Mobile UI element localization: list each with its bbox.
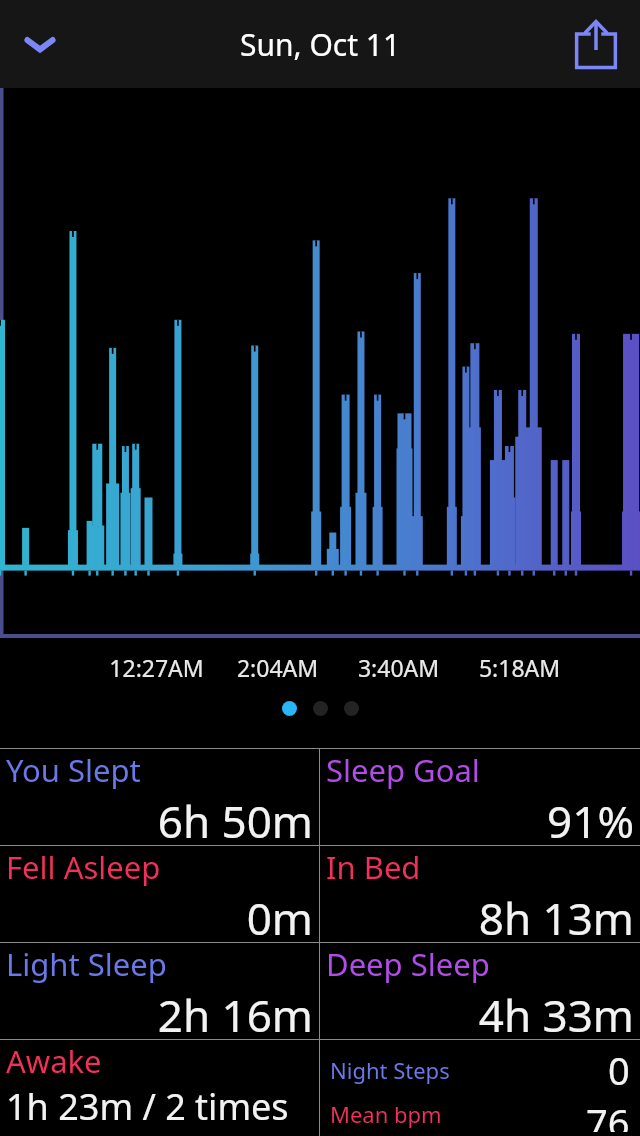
button[interactable]: Share	[564, 12, 628, 76]
staticText: 2h 16m	[6, 985, 313, 1039]
staticText: 3:40AM	[338, 652, 459, 683]
button[interactable]: Light Sleep	[0, 943, 319, 1039]
button[interactable]: You Slept	[0, 749, 319, 845]
staticText: 12:27AM	[96, 652, 217, 683]
staticText: Fell Asleep	[6, 846, 161, 888]
staticText: Sun, Oct 11	[240, 24, 401, 65]
staticText: 91%	[326, 791, 634, 845]
staticText: Sleep Goal	[326, 749, 480, 791]
staticText: Mean bpm	[330, 1099, 442, 1129]
staticText: In Bed	[326, 846, 421, 888]
staticText: 0m	[6, 888, 313, 942]
button[interactable]: Collapse	[8, 12, 72, 76]
button[interactable]: Page 3	[344, 701, 359, 716]
button[interactable]: Sleep Goal	[320, 749, 640, 845]
staticText: Awake	[6, 1040, 102, 1082]
button[interactable]: Deep Sleep	[320, 943, 640, 1039]
button[interactable]: In Bed	[320, 846, 640, 942]
staticText: 6h 50m	[6, 791, 313, 845]
staticText: 0	[608, 1044, 630, 1096]
button[interactable]: Awake	[0, 1040, 319, 1136]
staticText: Light Sleep	[6, 943, 167, 985]
button[interactable]: Fell Asleep	[0, 846, 319, 942]
staticText: 4h 33m	[326, 985, 634, 1039]
button[interactable]: Night Steps	[320, 1040, 640, 1136]
staticText: 76	[586, 1096, 630, 1132]
button[interactable]: Page 2	[313, 701, 328, 716]
staticText: You Slept	[6, 749, 141, 791]
staticText: Deep Sleep	[326, 943, 490, 985]
staticText: 2:04AM	[217, 652, 338, 683]
button[interactable]: Page 1	[282, 701, 297, 716]
staticText: 1h 23m / 2 times	[6, 1082, 313, 1131]
button[interactable]: Sleep movement chart	[0, 88, 640, 638]
staticText: 8h 13m	[326, 888, 634, 942]
staticText: Night Steps	[330, 1055, 450, 1085]
staticText: 5:18AM	[459, 652, 580, 683]
